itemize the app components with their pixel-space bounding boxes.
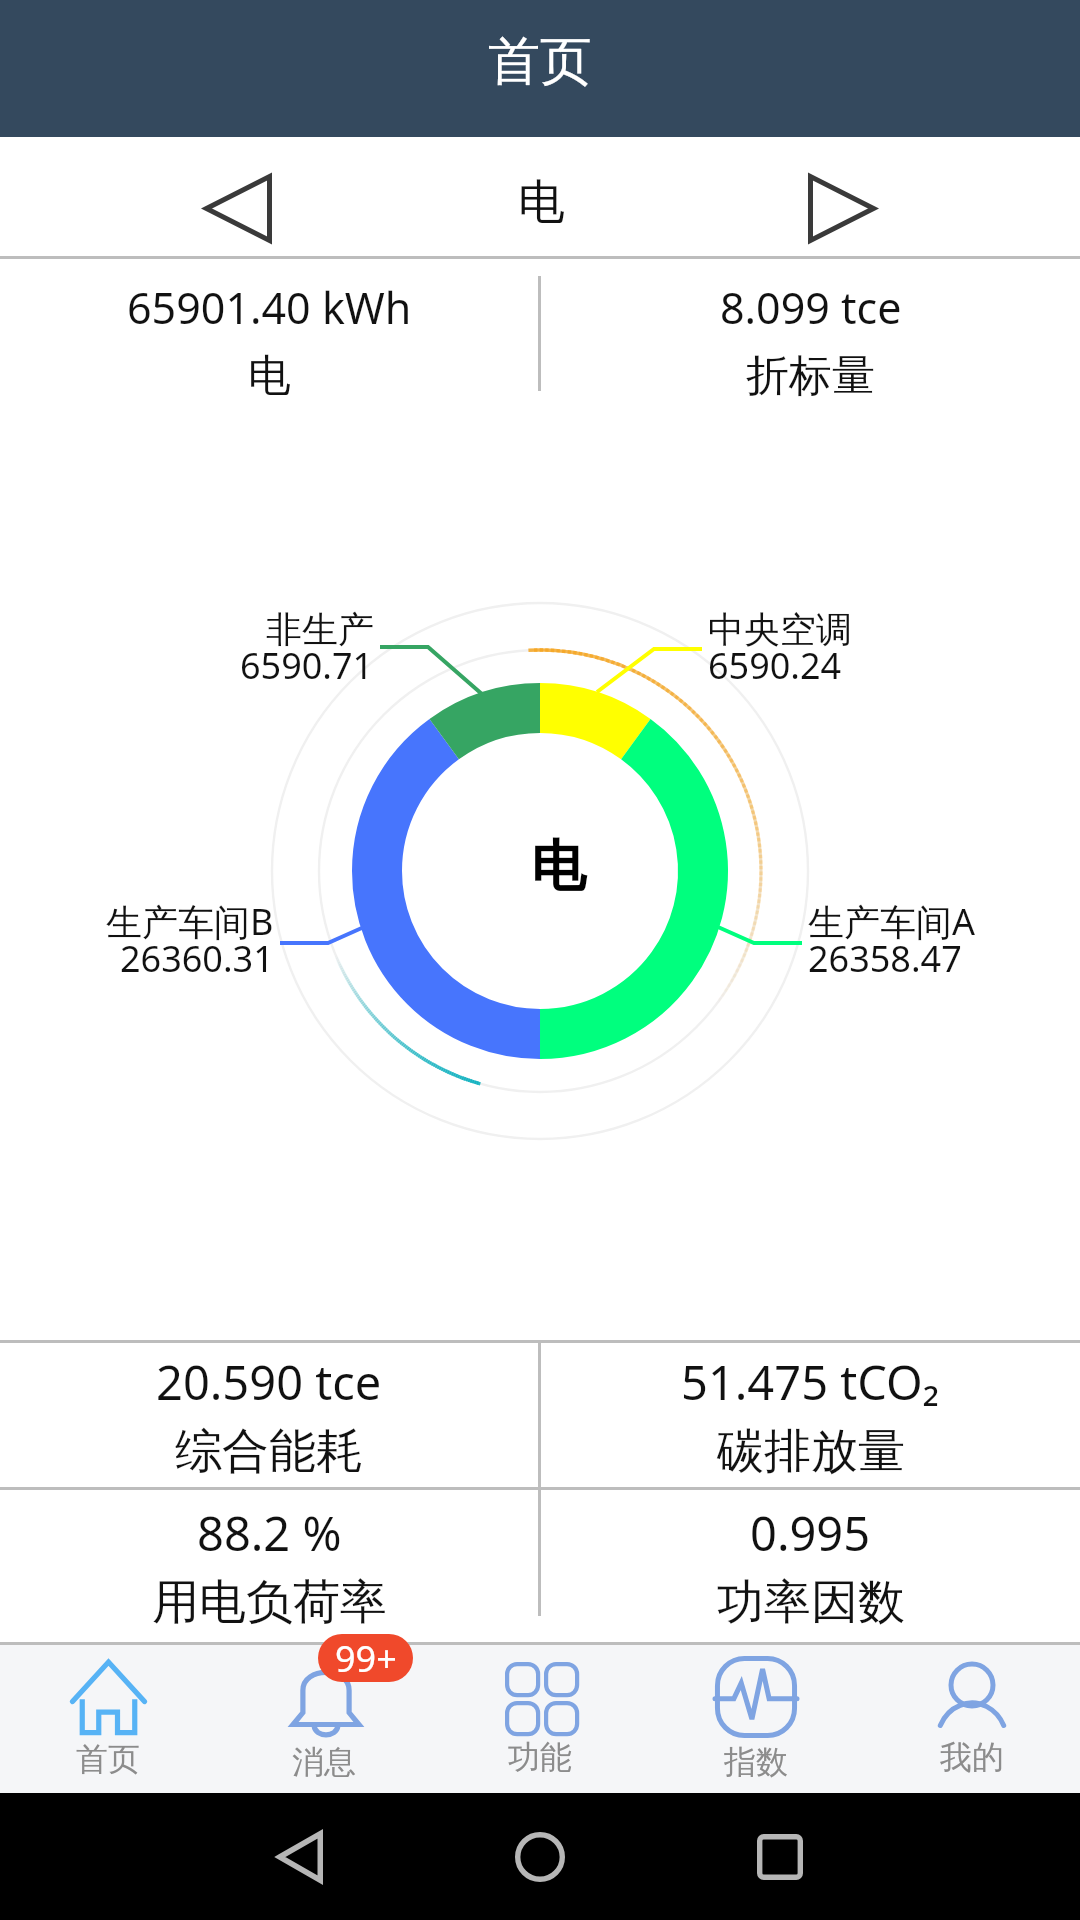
button[interactable]: Recents <box>670 1793 890 1920</box>
staticText: 88.2 % <box>197 1501 342 1565</box>
staticText: 26360.31 <box>120 934 274 983</box>
staticText: 20.590 tce <box>156 1350 382 1414</box>
staticText: 折标量 <box>746 349 875 403</box>
staticText: 非生产 <box>266 607 374 652</box>
staticText: 电 <box>531 832 586 901</box>
staticText: 电 <box>518 173 565 232</box>
staticText: 26358.47 <box>808 934 962 983</box>
button[interactable]: Next <box>752 149 932 268</box>
staticText: 8.099 tce <box>720 278 902 337</box>
button[interactable]: Back <box>190 1793 410 1920</box>
button[interactable]: 99+ <box>216 1645 432 1793</box>
staticText: 首页 <box>76 1739 140 1779</box>
staticText: 生产车间B <box>106 897 274 946</box>
staticText: 功率因数 <box>717 1573 905 1632</box>
staticText: 我的 <box>940 1737 1004 1777</box>
staticText: 6590.24 <box>708 641 842 690</box>
button[interactable]: 功能 <box>432 1645 648 1793</box>
staticText: 碳排放量 <box>717 1422 905 1481</box>
staticText: 51.475 tCO₂ <box>681 1350 940 1414</box>
staticText: 生产车间A <box>808 897 976 946</box>
button[interactable]: Home <box>430 1793 650 1920</box>
staticText: 65901.40 kWh <box>127 278 412 337</box>
staticText: 消息 <box>292 1742 356 1782</box>
button[interactable]: 我的 <box>864 1645 1080 1793</box>
staticText: 99+ <box>335 1634 397 1682</box>
button[interactable]: 首页 <box>0 1645 216 1793</box>
staticText: 指数 <box>724 1742 788 1782</box>
staticText: 6590.71 <box>240 641 374 690</box>
button[interactable]: Previous <box>148 149 328 268</box>
staticText: 中央空调 <box>708 607 852 652</box>
staticText: 功能 <box>508 1737 572 1777</box>
staticText: 首页 <box>488 29 592 95</box>
staticText: 电 <box>248 349 291 403</box>
staticText: 用电负荷率 <box>152 1573 387 1632</box>
staticText: 0.995 <box>750 1501 871 1565</box>
staticText: 综合能耗 <box>175 1422 363 1481</box>
button[interactable]: 指数 <box>648 1645 864 1793</box>
